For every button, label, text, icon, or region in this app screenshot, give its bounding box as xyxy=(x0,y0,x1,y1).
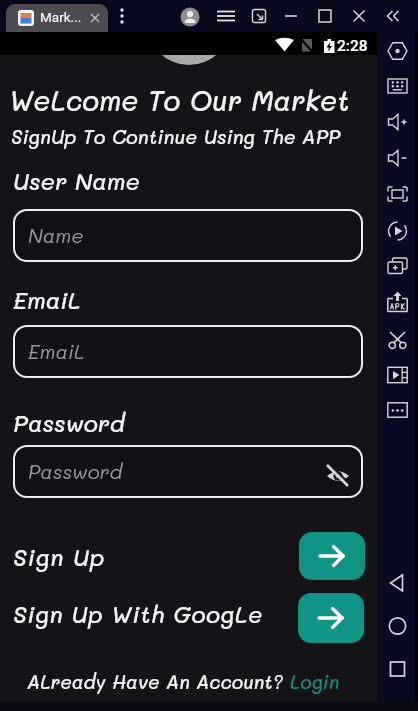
button[interactable] xyxy=(383,288,412,316)
staticText: Name xyxy=(28,222,84,248)
button[interactable] xyxy=(299,532,365,580)
button[interactable] xyxy=(383,655,412,683)
button[interactable] xyxy=(114,1,130,31)
staticText: EmaiL xyxy=(28,338,85,364)
button[interactable] xyxy=(216,1,236,31)
button[interactable] xyxy=(383,396,412,424)
button[interactable] xyxy=(180,7,200,27)
staticText: Mark... xyxy=(40,9,82,25)
button[interactable] xyxy=(250,1,268,31)
button[interactable] xyxy=(383,217,412,245)
staticText: EmaiL xyxy=(13,284,81,315)
button[interactable]: EmaiL xyxy=(13,325,363,378)
button[interactable]: Login xyxy=(290,669,340,694)
staticText: SignUp To Continue Using The APP xyxy=(11,124,341,149)
button[interactable]: Mark... xyxy=(6,4,108,32)
button[interactable] xyxy=(90,13,100,23)
button[interactable] xyxy=(383,37,412,65)
button[interactable] xyxy=(383,252,412,280)
button[interactable] xyxy=(383,569,412,597)
button[interactable] xyxy=(298,593,364,643)
button[interactable] xyxy=(350,1,368,31)
button[interactable]: Password xyxy=(13,445,363,498)
staticText: Password xyxy=(13,407,125,438)
staticText: Sign Up xyxy=(13,541,106,572)
staticText: Sign Up With GoogLe xyxy=(13,598,263,629)
button[interactable] xyxy=(383,180,412,208)
button[interactable] xyxy=(316,1,334,31)
button[interactable] xyxy=(383,72,412,100)
button[interactable]: Name xyxy=(13,209,363,262)
button[interactable] xyxy=(282,1,300,31)
button[interactable] xyxy=(383,326,412,354)
staticText: User Name xyxy=(13,165,140,196)
staticText: ALready Have An Account? xyxy=(27,669,290,694)
button[interactable] xyxy=(386,1,404,31)
button[interactable] xyxy=(383,612,412,640)
button[interactable] xyxy=(383,361,412,389)
staticText: WeLcome To Our Market xyxy=(9,82,350,118)
button[interactable] xyxy=(383,108,412,136)
button[interactable] xyxy=(383,144,412,172)
staticText: 2:28 xyxy=(337,37,368,55)
staticText: Password xyxy=(28,458,123,484)
